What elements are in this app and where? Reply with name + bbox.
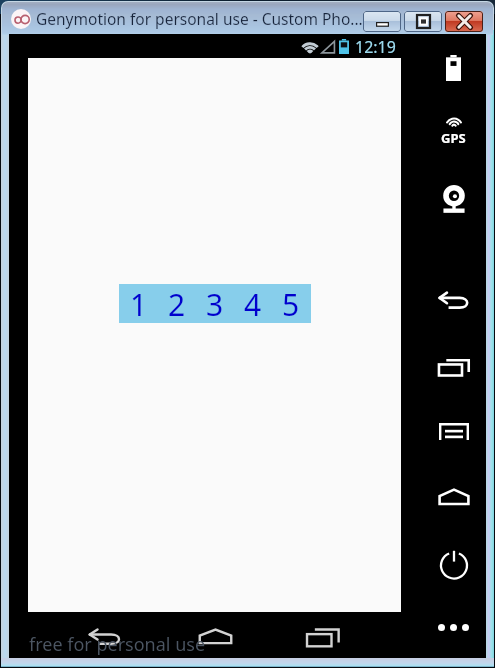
button[interactable]: Window (404, 11, 442, 32)
button[interactable]: Close (445, 11, 483, 32)
button[interactable]: Home (193, 615, 237, 659)
button[interactable]: GPS (431, 109, 476, 154)
staticText: 4 (244, 284, 262, 323)
button[interactable]: Recents (431, 345, 476, 390)
button[interactable]: Back (83, 615, 127, 659)
button[interactable]: Power (431, 541, 476, 586)
staticText: Genymotion for personal use - Custom Pho… (36, 8, 363, 29)
button[interactable]: Home (431, 475, 476, 520)
button[interactable]: Recents (301, 615, 345, 659)
staticText: 2 (168, 284, 186, 323)
staticText: 3 (206, 284, 224, 323)
button[interactable]: Window (363, 11, 401, 32)
staticText: free for personal use (29, 632, 206, 657)
button[interactable]: Back (431, 278, 476, 323)
button[interactable]: 1 (119, 284, 311, 323)
staticText: 12:19 (355, 36, 396, 57)
button[interactable]: Camera (431, 177, 476, 222)
button[interactable]: Menu (431, 409, 476, 454)
button[interactable]: Battery (431, 45, 476, 90)
staticText: 5 (282, 284, 300, 323)
staticText: 1 (130, 284, 148, 323)
staticText: GPS (441, 129, 466, 147)
button[interactable]: More (431, 605, 476, 650)
